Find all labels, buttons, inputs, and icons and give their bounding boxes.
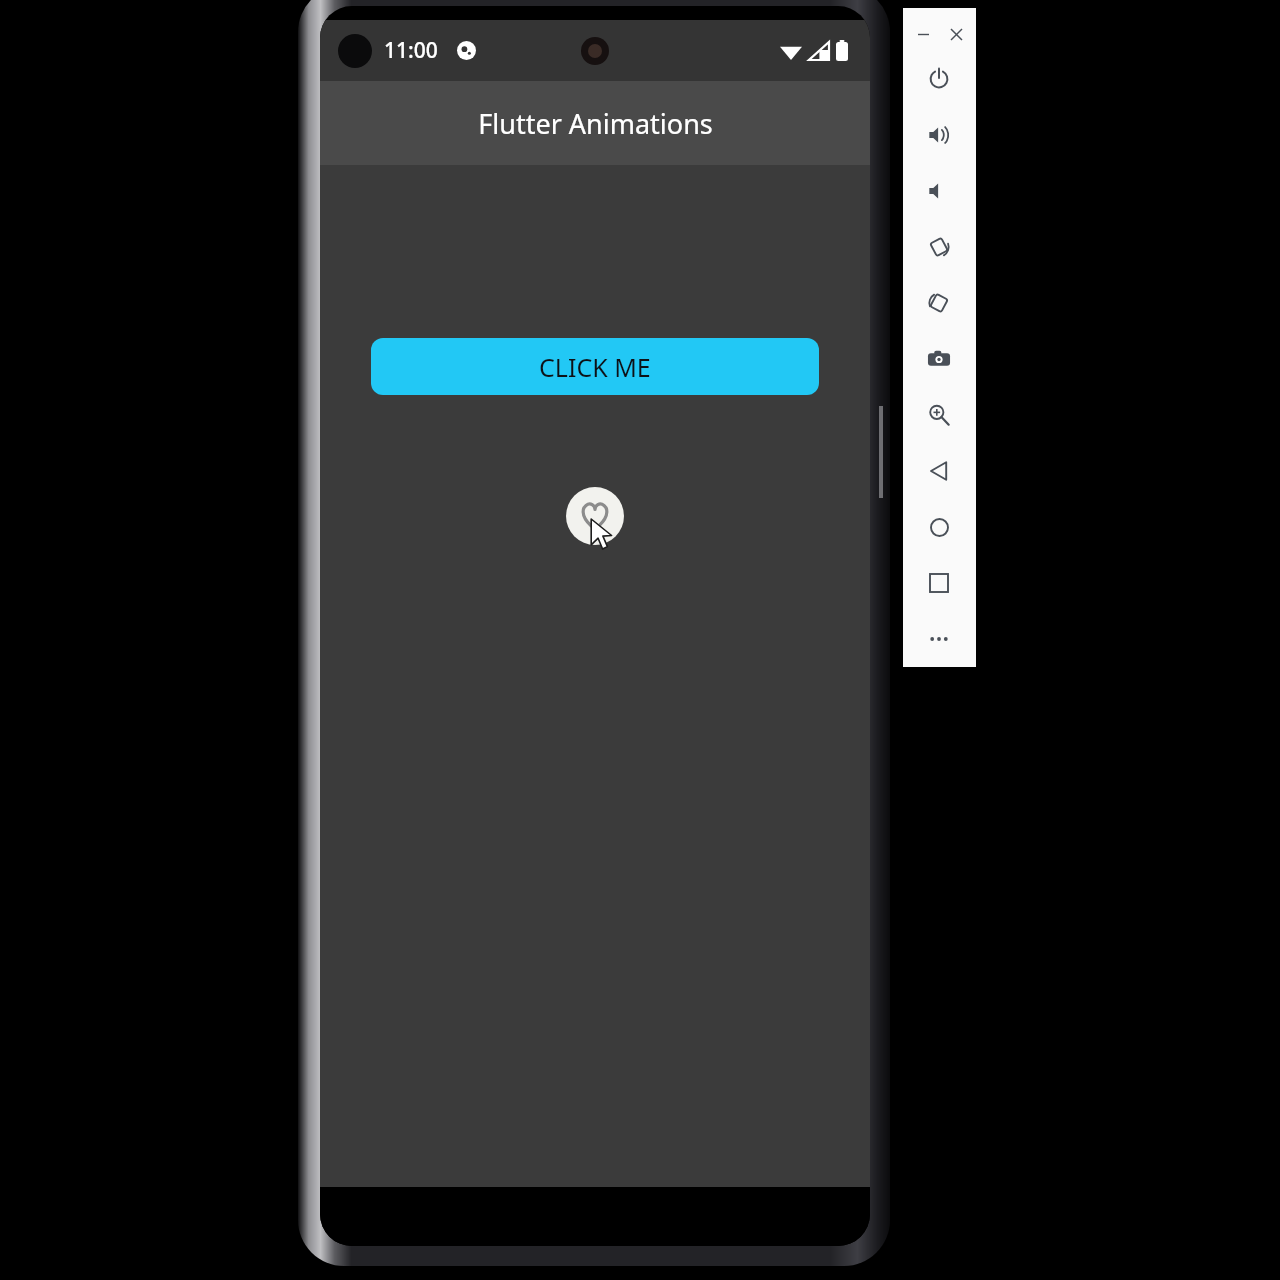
button[interactable]: Minimise: [914, 25, 932, 43]
button[interactable]: Take screenshot: [920, 340, 958, 378]
button[interactable]: CLICK ME: [371, 338, 819, 395]
button[interactable]: Back: [920, 452, 958, 490]
button[interactable]: Favourite: [566, 487, 624, 545]
button[interactable]: Volume down: [920, 172, 958, 210]
staticText: CLICK ME: [539, 350, 651, 384]
staticText: Flutter Animations: [478, 105, 713, 142]
button[interactable]: Zoom: [920, 396, 958, 434]
button[interactable]: Rotate left: [920, 228, 958, 266]
button[interactable]: Power: [920, 60, 958, 98]
button[interactable]: More: [920, 620, 958, 658]
button[interactable]: Close: [947, 25, 965, 43]
button[interactable]: Home: [920, 508, 958, 546]
button[interactable]: Rotate right: [920, 284, 958, 322]
staticText: 11:00: [384, 36, 438, 65]
button[interactable]: Overview: [920, 564, 958, 602]
button[interactable]: Volume up: [920, 116, 958, 154]
